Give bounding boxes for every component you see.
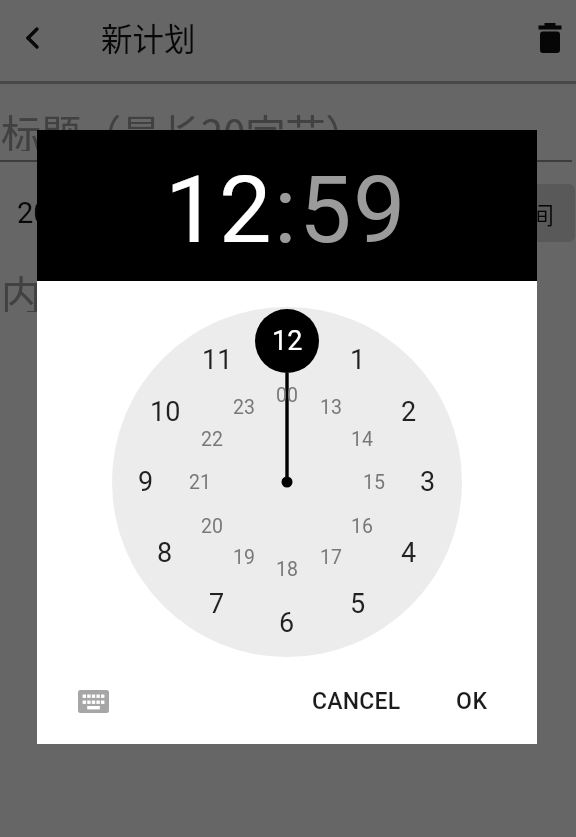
staticText: : (274, 155, 299, 265)
staticText: 10 (150, 396, 181, 428)
staticText: 新计划 (101, 14, 196, 60)
staticText: 3 (420, 466, 436, 498)
staticText: 00 (276, 384, 298, 407)
staticText: 14 (351, 428, 373, 451)
staticText: 7 (209, 588, 225, 620)
staticText: 18 (276, 558, 298, 581)
staticText: 17 (320, 546, 342, 569)
staticText: CANCEL (312, 688, 401, 715)
staticText: 6 (279, 607, 295, 639)
staticText: OK (456, 688, 488, 715)
staticText: 20 (201, 515, 223, 538)
button[interactable] (10, 17, 52, 59)
staticText: 选择时间 (458, 196, 554, 231)
staticText: 21 (189, 471, 211, 494)
staticText: 标题（最长20字节） (1, 103, 366, 151)
button[interactable] (528, 16, 572, 60)
staticText: 2020-06-01 (17, 196, 164, 230)
staticText: 8 (157, 537, 173, 569)
staticText: 9 (138, 466, 154, 498)
staticText: 23 (233, 396, 255, 419)
staticText: 内容 (1, 264, 81, 312)
staticText: 15 (363, 471, 385, 494)
staticText: 4 (401, 537, 417, 569)
button[interactable]: OK (435, 679, 508, 723)
staticText: 19 (233, 546, 255, 569)
staticText: 13 (320, 396, 342, 419)
staticText: 12 (272, 325, 303, 357)
staticText: 11 (202, 344, 233, 376)
button[interactable]: 选择时间 (440, 184, 575, 242)
button[interactable] (69, 679, 117, 723)
staticText: 22 (201, 428, 223, 451)
staticText: 2 (401, 396, 417, 428)
staticText: 1 (350, 344, 366, 376)
staticText: 5 (350, 588, 366, 620)
staticText: 16 (351, 515, 373, 538)
button[interactable]: CANCEL (290, 679, 423, 723)
staticText: 59 (299, 155, 408, 265)
staticText: 12 (165, 155, 274, 265)
